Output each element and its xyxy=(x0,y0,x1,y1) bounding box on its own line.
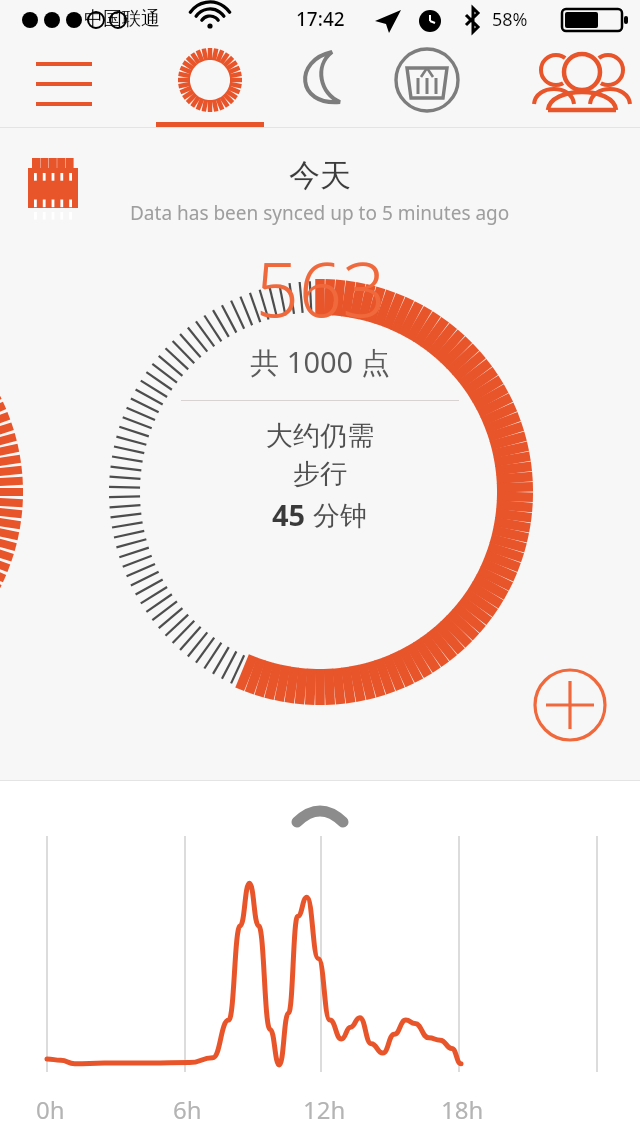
staticText: 步行 xyxy=(293,457,347,491)
staticText: 58% xyxy=(492,7,528,32)
staticText: 17:42 xyxy=(296,6,345,32)
staticText: 6h xyxy=(173,1093,202,1126)
staticText: 共 1000 点 xyxy=(250,342,390,382)
staticText: Data has been synced up to 5 minutes ago xyxy=(130,200,510,226)
staticText: 中国联通 xyxy=(84,7,160,31)
staticText: 0h xyxy=(36,1093,65,1126)
staticText: 45 xyxy=(272,495,306,534)
staticText: 今天 xyxy=(289,156,351,195)
button[interactable]: Add xyxy=(532,667,608,743)
button[interactable]: Calendar xyxy=(24,154,86,216)
staticText: 分钟 xyxy=(306,496,368,533)
button[interactable]: Friends xyxy=(524,40,640,128)
staticText: 563 xyxy=(255,236,386,340)
button[interactable]: Sleep xyxy=(266,40,370,128)
button[interactable]: Menu xyxy=(0,40,128,128)
button[interactable]: Activity xyxy=(156,40,264,128)
staticText: 大约仍需 xyxy=(266,419,374,453)
button[interactable]: Weight xyxy=(374,40,480,128)
button[interactable]: Expand chart xyxy=(285,796,355,824)
staticText: 12h xyxy=(303,1093,346,1126)
staticText: 18h xyxy=(441,1093,484,1126)
